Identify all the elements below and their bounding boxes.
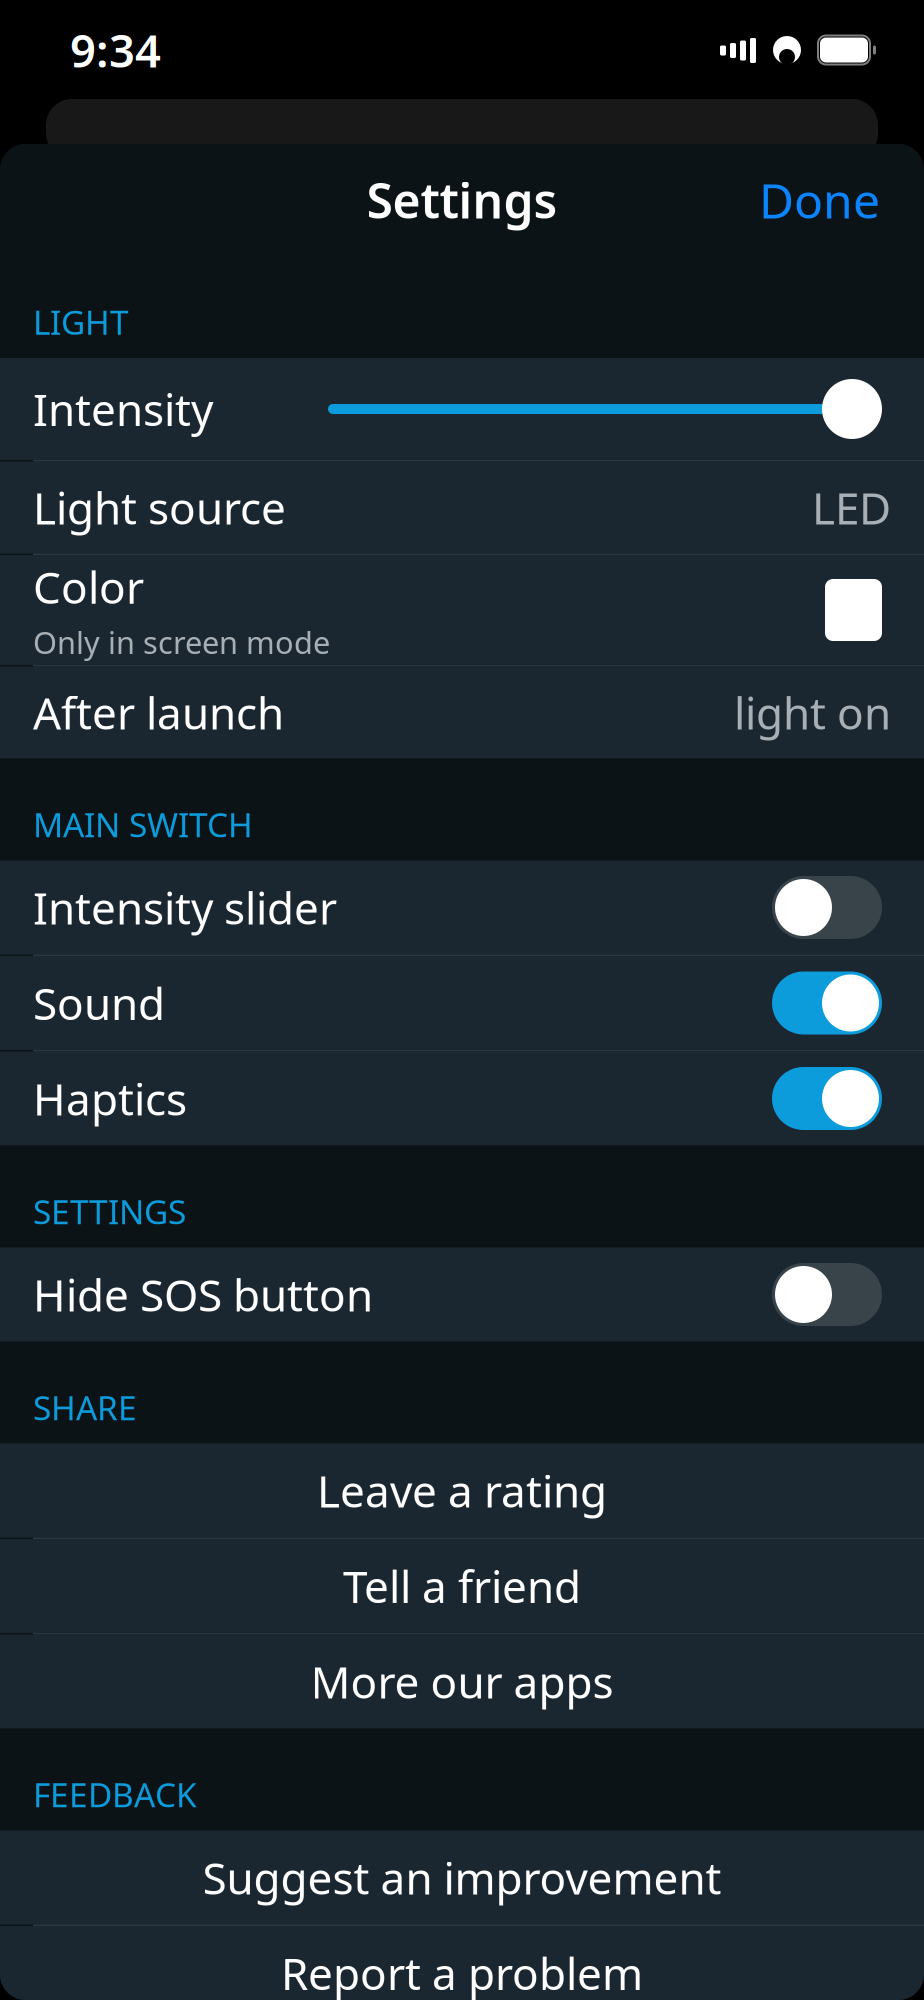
staticText: Hide SOS button: [33, 1265, 373, 1324]
staticText: Intensity slider: [33, 878, 337, 937]
staticText: FEEDBACK: [33, 1772, 197, 1816]
staticText: SHARE: [33, 1385, 137, 1429]
button[interactable]: After launch: [0, 666, 924, 758]
staticText: MAIN SWITCH: [33, 802, 253, 846]
staticText: Light source: [33, 478, 286, 537]
staticText: SETTINGS: [33, 1189, 186, 1233]
staticText: Report a problem: [281, 1944, 643, 2000]
staticText: Leave a rating: [317, 1461, 607, 1520]
staticText: Tell a friend: [343, 1557, 581, 1615]
button[interactable]: Sound: [0, 956, 924, 1050]
button[interactable]: Intensity slider: [0, 860, 924, 954]
staticText: LIGHT: [33, 300, 129, 344]
staticText: More our apps: [310, 1652, 613, 1711]
button[interactable]: Tell a friend: [0, 1539, 924, 1633]
staticText: After launch: [33, 683, 284, 742]
button[interactable]: Intensity: [0, 358, 924, 460]
button[interactable]: Color: [0, 555, 924, 665]
staticText: Haptics: [33, 1069, 187, 1128]
button[interactable]: Done: [739, 154, 900, 246]
button[interactable]: Haptics: [0, 1051, 924, 1145]
staticText: Intensity: [33, 380, 213, 438]
button[interactable]: Report a problem: [0, 1926, 924, 2000]
staticText: 9:34: [70, 20, 161, 80]
button[interactable]: Leave a rating: [0, 1443, 924, 1537]
staticText: Only in screen mode: [33, 622, 330, 663]
staticText: Done: [759, 168, 880, 232]
staticText: light on: [734, 683, 891, 742]
button[interactable]: Hide SOS button: [0, 1247, 924, 1341]
button[interactable]: More our apps: [0, 1634, 924, 1728]
button[interactable]: Light source: [0, 461, 924, 553]
staticText: Settings: [366, 168, 557, 232]
staticText: Suggest an improvement: [202, 1848, 721, 1907]
staticText: Color: [33, 557, 144, 616]
button[interactable]: Suggest an improvement: [0, 1830, 924, 1924]
staticText: LED: [812, 478, 891, 537]
staticText: Sound: [33, 974, 165, 1032]
